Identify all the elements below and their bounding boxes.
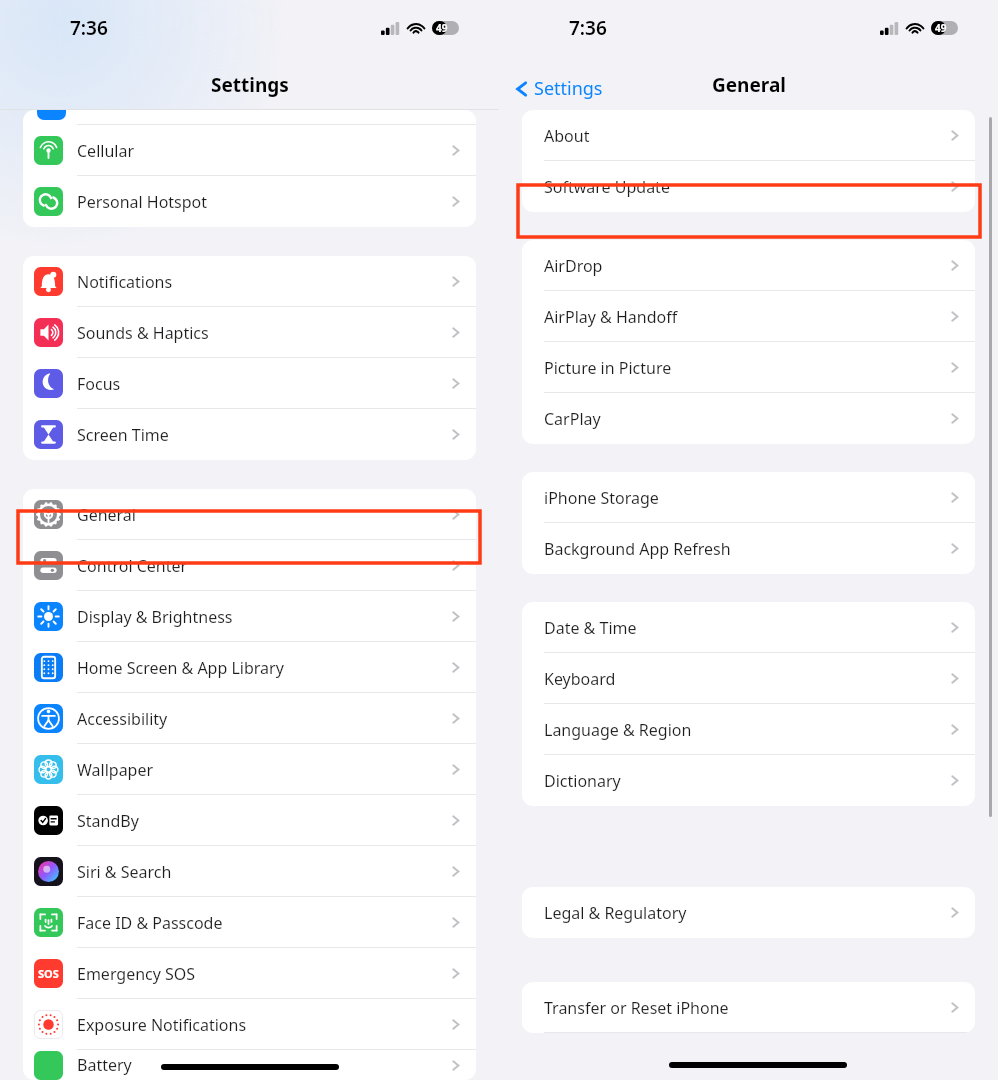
button[interactable]: Siri & Search — [23, 846, 476, 897]
staticText: Dictionary — [544, 770, 948, 792]
staticText: AirPlay & Handoff — [544, 306, 948, 328]
staticText: Settings — [211, 72, 289, 98]
button[interactable]: Picture in Picture — [522, 342, 975, 393]
staticText: Language & Region — [544, 719, 948, 741]
staticText: Battery — [77, 1054, 449, 1076]
button[interactable]: Battery — [23, 1050, 476, 1080]
button[interactable]: Screen Time — [23, 409, 476, 460]
button[interactable]: Sounds & Haptics — [23, 307, 476, 358]
button[interactable]: Home Screen & App Library — [23, 642, 476, 693]
button[interactable]: Transfer or Reset iPhone — [522, 982, 975, 1033]
staticText: Background App Refresh — [544, 538, 948, 560]
staticText: Keyboard — [544, 668, 948, 690]
staticText: Date & Time — [544, 617, 948, 639]
button[interactable]: Background App Refresh — [522, 523, 975, 574]
button[interactable]: Date & Time — [522, 602, 975, 653]
staticText: Accessibility — [77, 708, 449, 730]
staticText: 49 — [436, 21, 448, 35]
staticText: 7:36 — [70, 15, 108, 41]
button[interactable]: Notifications — [23, 256, 476, 307]
staticText: Emergency SOS — [77, 963, 449, 985]
staticText: Picture in Picture — [544, 357, 948, 379]
button[interactable]: SOS — [23, 948, 476, 999]
button[interactable]: Legal & Regulatory — [522, 887, 975, 938]
staticText: Software Update — [544, 176, 948, 198]
staticText: Face ID & Passcode — [77, 912, 449, 934]
staticText: Control Center — [77, 555, 449, 577]
button[interactable]: Face ID & Passcode — [23, 897, 476, 948]
staticText: AirDrop — [544, 255, 948, 277]
button[interactable]: Dictionary — [522, 755, 975, 806]
button[interactable]: Language & Region — [522, 704, 975, 755]
button[interactable]: StandBy — [23, 795, 476, 846]
staticText: CarPlay — [544, 408, 948, 430]
staticText: Cellular — [77, 140, 449, 162]
button[interactable]: Control Center — [23, 540, 476, 591]
staticText: Personal Hotspot — [77, 191, 449, 213]
staticText: 49 — [935, 21, 947, 35]
button[interactable]: Cellular — [23, 125, 476, 176]
staticText: Notifications — [77, 271, 449, 293]
button[interactable]: Settings — [515, 76, 603, 101]
staticText: Screen Time — [77, 424, 449, 446]
staticText: Focus — [77, 373, 449, 395]
button[interactable]: Exposure Notifications — [23, 999, 476, 1050]
staticText: SOS — [38, 966, 59, 981]
staticText: Legal & Regulatory — [544, 902, 948, 924]
staticText: Wallpaper — [77, 759, 449, 781]
staticText: About — [544, 125, 948, 147]
staticText: Sounds & Haptics — [77, 322, 449, 344]
button[interactable]: Display & Brightness — [23, 591, 476, 642]
staticText: iPhone Storage — [544, 487, 948, 509]
button[interactable]: AirDrop — [522, 240, 975, 291]
staticText: Siri & Search — [77, 861, 449, 883]
button[interactable]: Focus — [23, 358, 476, 409]
button[interactable]: Wallpaper — [23, 744, 476, 795]
staticText: 7:36 — [569, 15, 607, 41]
staticText: General — [77, 504, 449, 526]
button[interactable]: Software Update — [522, 161, 975, 212]
staticText: StandBy — [77, 810, 449, 832]
button[interactable]: AirPlay & Handoff — [522, 291, 975, 342]
staticText: Transfer or Reset iPhone — [544, 997, 948, 1019]
staticText: General — [712, 72, 786, 98]
staticText: Settings — [534, 76, 603, 101]
button[interactable]: iPhone Storage — [522, 472, 975, 523]
button[interactable]: CarPlay — [522, 393, 975, 444]
button[interactable]: Personal Hotspot — [23, 176, 476, 227]
button[interactable]: About — [522, 110, 975, 161]
button[interactable]: General — [23, 489, 476, 540]
staticText: Display & Brightness — [77, 606, 449, 628]
staticText: Exposure Notifications — [77, 1014, 449, 1036]
staticText: Home Screen & App Library — [77, 657, 449, 679]
button[interactable]: Keyboard — [522, 653, 975, 704]
button[interactable]: Accessibility — [23, 693, 476, 744]
